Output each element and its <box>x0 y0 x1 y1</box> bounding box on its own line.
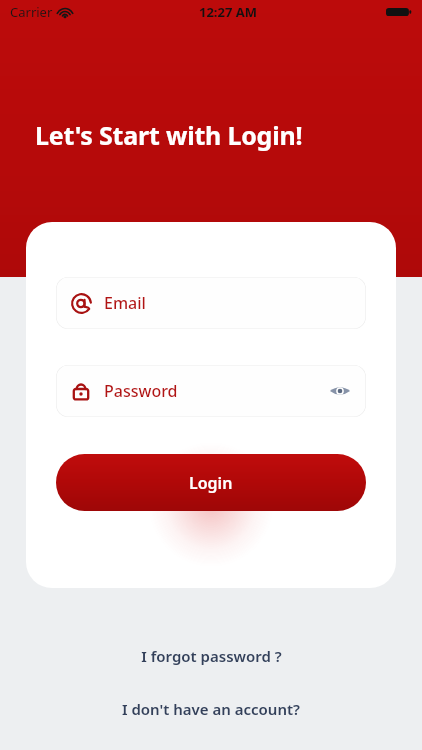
staticText: Email <box>104 292 146 314</box>
staticText: 12:27 AM <box>199 3 258 21</box>
button[interactable]: I don't have an account? <box>108 693 314 725</box>
button[interactable]: Password <box>56 365 366 417</box>
button[interactable]: Login <box>56 454 366 511</box>
button[interactable]: Show password <box>328 379 352 403</box>
staticText: Let's Start with Login! <box>35 118 303 152</box>
button[interactable]: I forgot password ? <box>127 640 296 672</box>
staticText: Carrier <box>10 3 53 21</box>
staticText: I forgot password ? <box>141 646 282 666</box>
staticText: Login <box>189 472 233 494</box>
staticText: Password <box>104 380 178 402</box>
staticText: I don't have an account? <box>122 699 300 719</box>
button[interactable]: Email <box>56 277 366 329</box>
